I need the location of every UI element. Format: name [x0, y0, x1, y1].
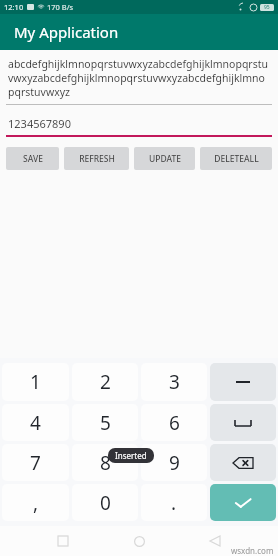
- button[interactable]: 3: [141, 363, 207, 401]
- button[interactable]: Recents: [50, 528, 76, 554]
- button[interactable]: Space: [210, 404, 276, 441]
- staticText: 8: [100, 450, 111, 476]
- button[interactable]: SAVE: [6, 147, 59, 170]
- staticText: 9: [169, 450, 180, 476]
- staticText: ,: [33, 490, 39, 516]
- staticText: My Application: [14, 22, 119, 42]
- staticText: 12:10: [4, 2, 24, 12]
- button[interactable]: Minus: [210, 363, 276, 401]
- button[interactable]: Home: [126, 528, 152, 554]
- button[interactable]: REFRESH: [64, 147, 129, 170]
- button[interactable]: 6: [141, 404, 207, 441]
- staticText: REFRESH: [79, 153, 115, 165]
- button[interactable]: 5: [72, 404, 138, 441]
- staticText: abcdefghijklmnopqrstuvwxyzabcdefghijklmn…: [8, 57, 270, 99]
- staticText: UPDATE: [149, 153, 181, 165]
- staticText: 6: [169, 410, 180, 436]
- staticText: 3: [169, 369, 180, 395]
- button[interactable]: Enter: [210, 484, 276, 521]
- button[interactable]: 4: [2, 404, 69, 441]
- button[interactable]: UPDATE: [134, 147, 195, 170]
- button[interactable]: Back: [202, 528, 228, 554]
- staticText: SAVE: [23, 153, 43, 165]
- staticText: DELETEALL: [214, 153, 259, 165]
- staticText: wsxdn.com: [231, 545, 274, 556]
- button[interactable]: DELETEALL: [200, 147, 272, 170]
- staticText: 7: [30, 450, 41, 476]
- button[interactable]: .: [141, 484, 207, 521]
- staticText: 4: [30, 410, 41, 436]
- staticText: 0: [100, 490, 111, 516]
- button[interactable]: 1: [2, 363, 69, 401]
- button[interactable]: 9: [141, 444, 207, 481]
- staticText: 170 B/s: [47, 2, 74, 12]
- staticText: 5: [100, 410, 111, 436]
- button[interactable]: 0: [72, 484, 138, 521]
- staticText: .: [171, 490, 177, 516]
- button[interactable]: Backspace: [210, 444, 276, 481]
- staticText: 1234567890: [8, 116, 71, 131]
- staticText: 1: [30, 369, 41, 395]
- button[interactable]: ,: [2, 484, 69, 521]
- button[interactable]: 7: [2, 444, 69, 481]
- staticText: Inserted: [115, 450, 147, 461]
- button[interactable]: 2: [72, 363, 138, 401]
- button[interactable]: 8: [72, 444, 138, 481]
- staticText: 95: [264, 4, 270, 11]
- staticText: 2: [100, 369, 111, 395]
